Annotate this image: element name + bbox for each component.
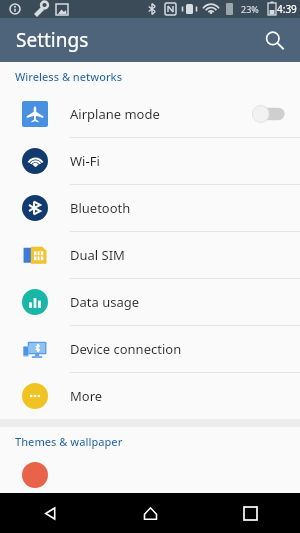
staticText: Dual SIM	[70, 246, 300, 264]
button[interactable]: Back	[0, 493, 100, 533]
staticText: Themes & wallpaper	[15, 434, 123, 449]
button[interactable]: Search	[256, 22, 292, 58]
staticText: Settings	[16, 27, 89, 53]
button[interactable]: Airplane mode	[0, 91, 300, 137]
staticText: Device connection	[70, 340, 300, 358]
staticText: Airplane mode	[70, 105, 250, 123]
button[interactable]: Data usage	[0, 279, 300, 325]
staticText: More	[70, 387, 300, 405]
staticText: 23%	[241, 3, 259, 15]
button[interactable]: Home	[100, 493, 200, 533]
button[interactable]: More	[0, 373, 300, 419]
staticText: Data usage	[70, 293, 300, 311]
button[interactable]: Dual SIM	[0, 232, 300, 278]
button[interactable]: Wi-Fi	[0, 138, 300, 184]
button[interactable]: Device connection	[0, 326, 300, 372]
button[interactable]: Bluetooth	[0, 185, 300, 231]
staticText: Wi-Fi	[70, 152, 300, 170]
staticText: Wireless & networks	[15, 69, 123, 84]
staticText: Bluetooth	[70, 199, 300, 217]
button[interactable]	[0, 456, 300, 493]
staticText: 4:39	[277, 2, 297, 16]
button[interactable]: Recents	[200, 493, 300, 533]
